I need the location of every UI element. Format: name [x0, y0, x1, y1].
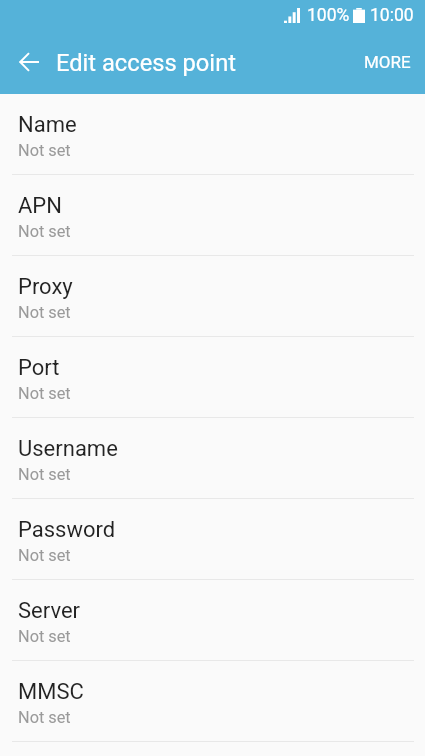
- button[interactable]: Password: [0, 499, 425, 580]
- button[interactable]: Server: [0, 580, 425, 661]
- staticText: Server: [18, 598, 81, 624]
- staticText: Username: [18, 436, 118, 462]
- staticText: Not set: [18, 546, 71, 565]
- staticText: 100%: [307, 5, 350, 26]
- staticText: Proxy: [18, 274, 73, 300]
- staticText: Not set: [18, 384, 71, 403]
- button[interactable]: Port: [0, 337, 425, 418]
- staticText: Not set: [18, 708, 71, 727]
- staticText: Not set: [18, 627, 71, 646]
- staticText: Not set: [18, 141, 71, 160]
- button[interactable]: Name: [0, 94, 425, 175]
- button[interactable]: MORE: [350, 28, 425, 94]
- staticText: Name: [18, 112, 77, 138]
- button[interactable]: Navigate up: [0, 28, 58, 94]
- staticText: 10:00: [370, 5, 414, 26]
- staticText: Edit access point: [56, 49, 236, 77]
- staticText: Not set: [18, 465, 71, 484]
- button[interactable]: Username: [0, 418, 425, 499]
- button[interactable]: MMSC: [0, 661, 425, 742]
- button[interactable]: APN: [0, 175, 425, 256]
- staticText: Port: [18, 355, 60, 381]
- staticText: Password: [18, 517, 116, 543]
- button[interactable]: Proxy: [0, 256, 425, 337]
- staticText: APN: [18, 193, 62, 219]
- staticText: Not set: [18, 222, 71, 241]
- staticText: Not set: [18, 303, 71, 322]
- staticText: MORE: [364, 52, 411, 72]
- staticText: MMSC: [18, 679, 84, 705]
